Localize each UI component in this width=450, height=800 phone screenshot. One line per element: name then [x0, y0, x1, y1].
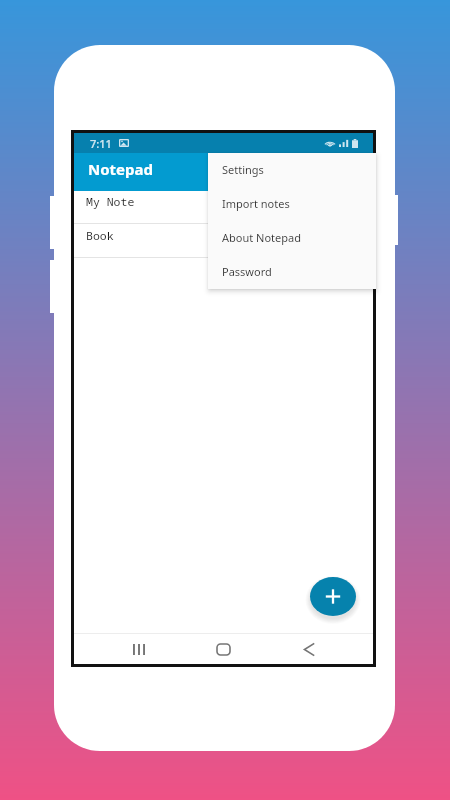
- button[interactable]: Import notes: [208, 189, 376, 223]
- staticText: About Notepad: [222, 230, 301, 245]
- staticText: Settings: [222, 162, 264, 177]
- button[interactable]: Settings: [208, 155, 376, 189]
- staticText: Password: [222, 264, 272, 279]
- button[interactable]: My Note: [74, 191, 373, 224]
- staticText: Import notes: [222, 196, 290, 211]
- staticText: Notepad: [88, 159, 153, 179]
- staticText: Book: [86, 228, 114, 244]
- staticText: 7:11: [90, 136, 112, 151]
- button[interactable]: Recent apps: [111, 634, 166, 664]
- button[interactable]: Back: [281, 634, 336, 664]
- button[interactable]: Home: [196, 634, 251, 664]
- button[interactable]: Add note: [303, 570, 363, 623]
- button[interactable]: About Notepad: [208, 223, 376, 257]
- button[interactable]: Password: [208, 257, 376, 289]
- staticText: My Note: [86, 194, 135, 210]
- button[interactable]: Book: [74, 224, 373, 258]
